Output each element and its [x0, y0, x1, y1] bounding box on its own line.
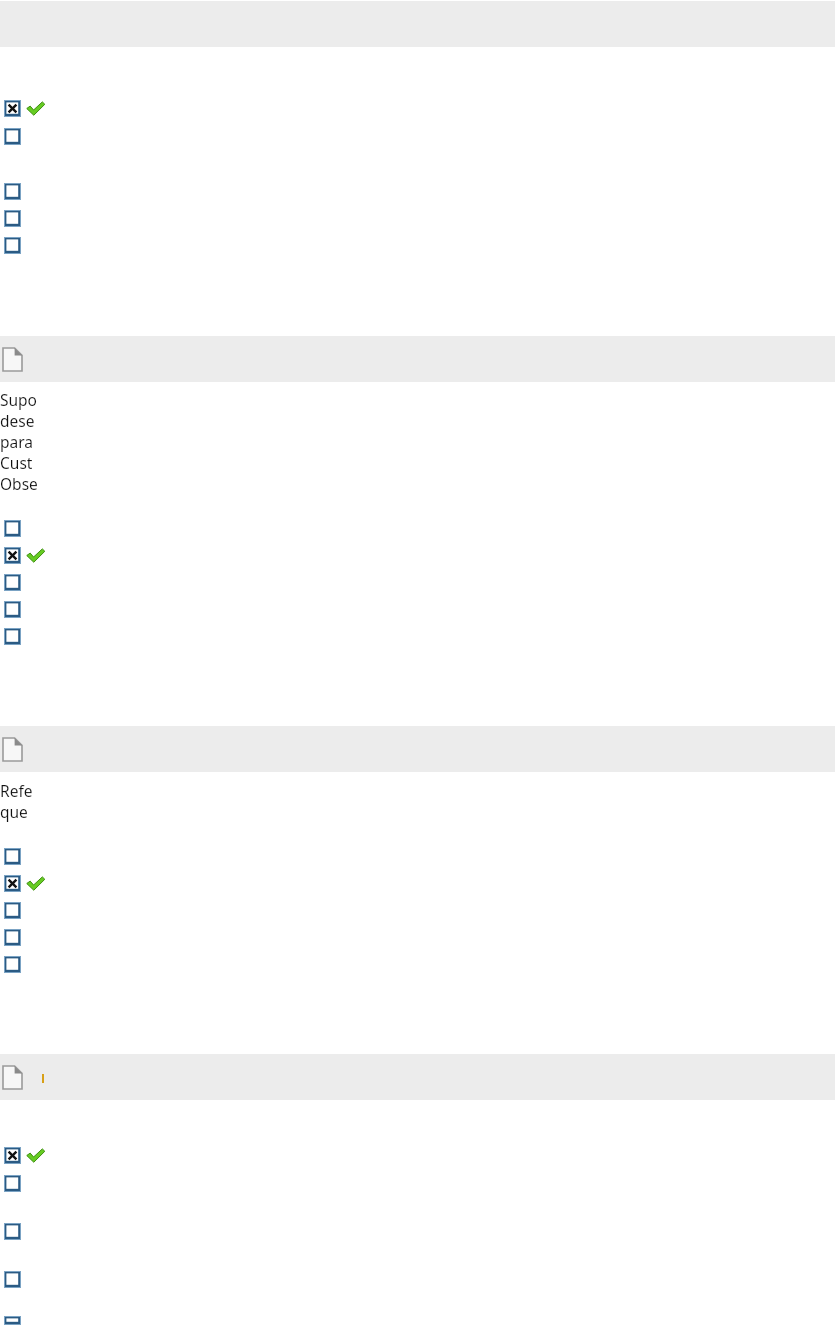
button[interactable]: Unchecked option	[0, 626, 835, 646]
button[interactable]: Unchecked option	[0, 1221, 835, 1241]
button[interactable]: Unchecked option	[4, 956, 21, 973]
button[interactable]: Checked option	[0, 1145, 835, 1165]
button[interactable]: Unchecked option	[4, 183, 21, 200]
other: Document	[2, 737, 23, 762]
staticText: Supo	[0, 389, 37, 410]
button[interactable]: Document	[0, 1054, 835, 1100]
other: Correct answer	[26, 548, 45, 563]
button[interactable]: Checked option	[0, 873, 835, 893]
button[interactable]: Unchecked option	[0, 900, 835, 920]
button[interactable]: Checked option	[4, 1147, 21, 1164]
button[interactable]: Unchecked option	[4, 1223, 21, 1240]
button[interactable]: Unchecked option	[0, 208, 835, 228]
button[interactable]: Unchecked option	[0, 1316, 835, 1325]
button[interactable]: Unchecked option	[4, 601, 21, 618]
button[interactable]: Unchecked option	[0, 846, 835, 866]
button[interactable]: Unchecked option	[4, 1316, 21, 1325]
button[interactable]: Unchecked option	[4, 902, 21, 919]
button[interactable]: Unchecked option	[4, 628, 21, 645]
button[interactable]: Unchecked option	[4, 848, 21, 865]
button[interactable]: Unchecked option	[4, 1271, 21, 1288]
staticText: Cust	[0, 452, 33, 473]
button[interactable]: Unchecked option	[0, 235, 835, 255]
button[interactable]: Document	[0, 336, 835, 382]
other: Document	[2, 1065, 23, 1090]
button[interactable]: Unchecked option	[0, 181, 835, 201]
button[interactable]: Unchecked option	[0, 1173, 835, 1193]
button[interactable]: Unchecked option	[0, 599, 835, 619]
button[interactable]: Checked option	[4, 547, 21, 564]
button[interactable]: Checked option	[4, 875, 21, 892]
other: Document	[2, 347, 23, 372]
staticText: para	[0, 431, 34, 452]
staticText: Refe	[0, 780, 33, 801]
button[interactable]: Document	[0, 726, 835, 772]
other: Correct answer	[26, 101, 45, 116]
button[interactable]: Unchecked option	[0, 954, 835, 974]
button[interactable]: Unchecked option	[4, 210, 21, 227]
other: Correct answer	[26, 876, 45, 891]
button[interactable]: Unchecked option	[0, 1269, 835, 1289]
button[interactable]: Unchecked option	[4, 929, 21, 946]
button[interactable]: Checked option	[0, 98, 835, 118]
staticText: dese	[0, 410, 35, 431]
button[interactable]: Unchecked option	[0, 518, 835, 538]
button[interactable]: Unchecked option	[4, 1175, 21, 1192]
staticText: que	[0, 801, 32, 822]
button[interactable]: Unchecked option	[4, 574, 21, 591]
button[interactable]: Unchecked option	[4, 520, 21, 537]
staticText: Obse	[0, 473, 38, 494]
button[interactable]: Checked option	[0, 545, 835, 565]
button[interactable]: Unchecked option	[0, 927, 835, 947]
button[interactable]: Unchecked option	[0, 126, 835, 146]
other: Correct answer	[26, 1148, 45, 1163]
button[interactable]: Unchecked option	[0, 572, 835, 592]
button[interactable]: Checked option	[4, 100, 21, 117]
button[interactable]: Unchecked option	[4, 237, 21, 254]
button[interactable]: Unchecked option	[4, 128, 21, 145]
